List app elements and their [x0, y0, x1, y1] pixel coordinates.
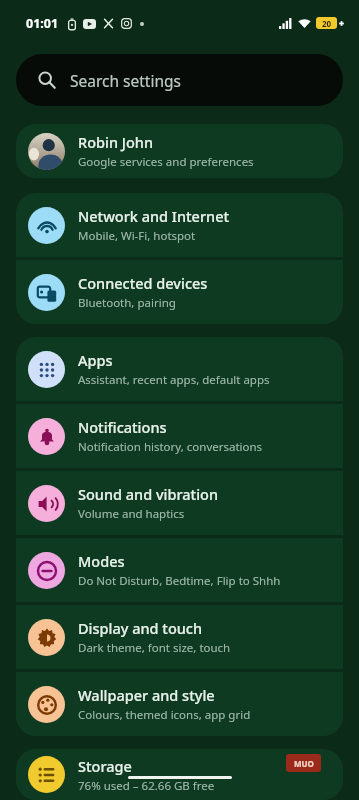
- staticText: Do Not Disturb, Bedtime, Flip to Shhh: [78, 573, 281, 589]
- button[interactable]: Modes: [16, 538, 343, 602]
- staticText: Dark theme, font size, touch: [78, 640, 231, 656]
- staticText: Volume and haptics: [78, 506, 185, 522]
- button[interactable]: Robin John: [16, 124, 343, 178]
- staticText: Search settings: [70, 70, 181, 91]
- staticText: Storage: [78, 756, 132, 776]
- button[interactable]: Display and touch: [16, 605, 343, 669]
- staticText: Mobile, Wi-Fi, hotspot: [78, 228, 196, 244]
- staticText: Network and Internet: [78, 206, 230, 226]
- staticText: Notification history, conversations: [78, 439, 263, 455]
- button[interactable]: Sound and vibration: [16, 471, 343, 535]
- button[interactable]: Storage: [16, 749, 343, 800]
- staticText: Google services and preferences: [78, 154, 254, 170]
- staticText: Bluetooth, pairing: [78, 295, 176, 311]
- staticText: 76% used – 62.66 GB free: [78, 778, 215, 794]
- staticText: Display and touch: [78, 618, 203, 638]
- staticText: Sound and vibration: [78, 484, 219, 504]
- staticText: 20: [322, 18, 332, 29]
- button[interactable]: Wallpaper and style: [16, 672, 343, 736]
- staticText: Notifications: [78, 417, 167, 437]
- button[interactable]: Notifications: [16, 404, 343, 468]
- staticText: Robin John: [78, 132, 154, 152]
- staticText: Modes: [78, 551, 125, 571]
- staticText: Assistant, recent apps, default apps: [78, 372, 270, 388]
- button[interactable]: Connected devices: [16, 260, 343, 324]
- staticText: Connected devices: [78, 273, 208, 293]
- button[interactable]: Search settings: [16, 54, 343, 106]
- staticText: 01:01: [26, 15, 59, 32]
- button[interactable]: Network and Internet: [16, 193, 343, 257]
- staticText: Wallpaper and style: [78, 685, 215, 705]
- staticText: Colours, themed icons, app grid: [78, 707, 251, 723]
- staticText: MUO: [294, 758, 314, 769]
- button[interactable]: Apps: [16, 337, 343, 401]
- staticText: Apps: [78, 350, 113, 370]
